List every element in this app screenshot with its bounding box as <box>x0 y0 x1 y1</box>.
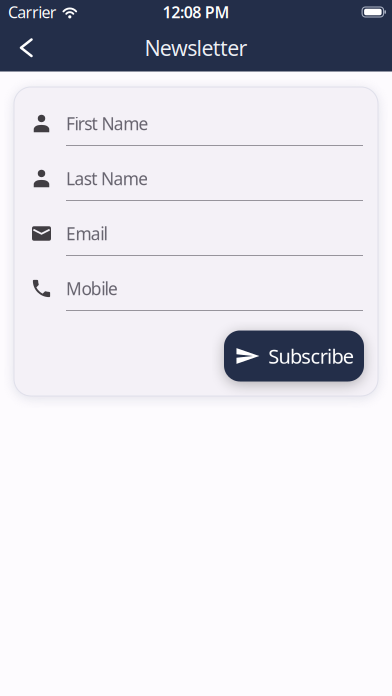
button[interactable]: Email <box>14 201 378 256</box>
button[interactable]: Last Name <box>14 146 378 201</box>
staticText: Subscribe <box>268 343 354 369</box>
button[interactable]: Mobile <box>14 256 378 311</box>
staticText: Last Name <box>66 167 148 190</box>
staticText: First Name <box>66 112 149 135</box>
button[interactable]: First Name <box>14 91 378 146</box>
staticText: 12:08 PM <box>162 1 229 23</box>
button[interactable]: Back <box>0 24 47 71</box>
staticText: Mobile <box>66 277 118 300</box>
staticText: Carrier <box>8 1 57 23</box>
button[interactable]: Subscribe <box>224 330 364 381</box>
staticText: Email <box>66 222 108 245</box>
staticText: Newsletter <box>145 34 247 62</box>
